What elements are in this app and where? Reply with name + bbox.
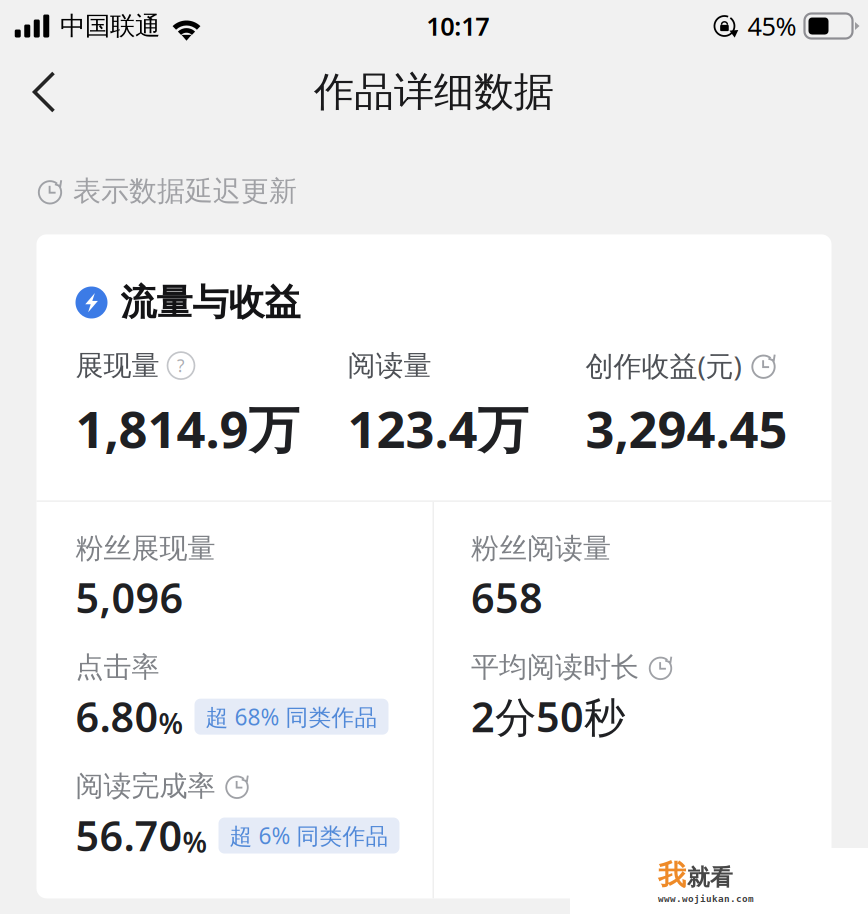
staticText: 2分50秒 xyxy=(471,689,625,744)
staticText: 6.80 xyxy=(75,689,158,744)
staticText: 3,294.45 xyxy=(585,395,787,462)
staticText: % xyxy=(158,704,183,742)
button[interactable]: 返回 xyxy=(0,56,88,128)
staticText: 658 xyxy=(471,570,543,625)
staticText: % xyxy=(182,823,207,861)
staticText: 56.70 xyxy=(75,808,182,863)
staticText: 1,814.9万 xyxy=(75,395,299,462)
staticText: 阅读量 xyxy=(347,348,431,383)
staticText: 点击率 xyxy=(75,650,159,684)
staticText: 就看 xyxy=(687,863,733,891)
staticText: 10:17 xyxy=(426,9,489,43)
staticText: 流量与收益 xyxy=(120,280,300,325)
staticText: 45% xyxy=(747,9,796,43)
staticText: 创作收益(元) xyxy=(585,347,741,384)
staticText: 表示数据延迟更新 xyxy=(73,174,297,208)
staticText: 展现量 xyxy=(75,348,159,383)
staticText: 粉丝展现量 xyxy=(75,531,215,566)
staticText: 超 6% 同类作品 xyxy=(229,820,388,851)
staticText: 超 68% 同类作品 xyxy=(205,702,377,732)
staticText: 粉丝阅读量 xyxy=(471,531,611,566)
staticText: 我 xyxy=(658,858,686,892)
staticText: 阅读完成率 xyxy=(75,769,215,803)
staticText: 作品详细数据 xyxy=(314,67,554,116)
staticText: 平均阅读时长 xyxy=(471,650,639,684)
staticText: 中国联通 xyxy=(60,10,160,41)
staticText: www.wojiukan.com xyxy=(658,893,754,904)
staticText: 5,096 xyxy=(75,570,183,625)
staticText: 123.4万 xyxy=(347,395,528,462)
staticText: ? xyxy=(177,354,185,377)
